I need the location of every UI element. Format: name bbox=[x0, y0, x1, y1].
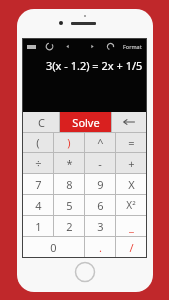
staticText: * bbox=[66, 156, 73, 171]
button[interactable]: Previous bbox=[62, 41, 73, 52]
button[interactable]: 9 bbox=[85, 174, 115, 194]
button[interactable]: 5 bbox=[54, 195, 84, 215]
staticText: . bbox=[99, 240, 102, 255]
staticText: 9 bbox=[97, 177, 104, 192]
button[interactable]: + bbox=[116, 153, 146, 173]
button[interactable]: ÷ bbox=[23, 153, 53, 173]
button[interactable]: Menu bbox=[25, 41, 38, 52]
button[interactable]: 8 bbox=[54, 174, 84, 194]
staticText: 5 bbox=[66, 198, 73, 213]
staticText: / bbox=[129, 240, 134, 255]
staticText: = bbox=[128, 135, 135, 150]
button[interactable]: Format bbox=[121, 43, 144, 50]
staticText: - bbox=[98, 156, 102, 171]
button[interactable]: X bbox=[116, 174, 146, 194]
staticText: 7 bbox=[35, 177, 42, 192]
staticText: 1 bbox=[35, 219, 42, 234]
button[interactable]: 3 bbox=[85, 216, 115, 236]
staticText: 2 bbox=[66, 219, 73, 234]
staticText: C bbox=[38, 115, 45, 130]
button[interactable]: Backspace bbox=[112, 112, 146, 132]
button[interactable]: Solve bbox=[60, 112, 111, 132]
button[interactable]: 0 bbox=[23, 237, 84, 257]
staticText: ÷ bbox=[35, 156, 42, 171]
button[interactable]: 7 bbox=[23, 174, 53, 194]
button[interactable]: _ bbox=[116, 216, 146, 236]
button[interactable]: * bbox=[54, 153, 84, 173]
staticText: Solve bbox=[72, 115, 100, 130]
button[interactable]: ( bbox=[23, 133, 53, 152]
button[interactable]: = bbox=[116, 133, 146, 152]
button[interactable]: . bbox=[85, 237, 115, 257]
button[interactable]: 4 bbox=[23, 195, 53, 215]
staticText: 0 bbox=[50, 240, 57, 255]
staticText: 3 bbox=[97, 219, 104, 234]
staticText: 8 bbox=[66, 177, 73, 192]
button[interactable]: / bbox=[116, 237, 146, 257]
button[interactable]: Undo bbox=[105, 41, 116, 52]
staticText: + bbox=[128, 156, 135, 171]
staticText: X² bbox=[126, 198, 136, 212]
staticText: 3(x - 1.2) = 2x + 1/5 bbox=[46, 58, 143, 73]
button[interactable]: Refresh bbox=[44, 41, 55, 52]
button[interactable]: 2 bbox=[54, 216, 84, 236]
button[interactable]: 6 bbox=[85, 195, 115, 215]
button[interactable]: - bbox=[85, 153, 115, 173]
button[interactable]: ^ bbox=[85, 133, 115, 152]
other: Backspace bbox=[122, 118, 136, 126]
button[interactable]: Home bbox=[74, 261, 96, 283]
button[interactable]: X² bbox=[116, 195, 146, 215]
staticText: X bbox=[128, 177, 135, 192]
staticText: ^ bbox=[97, 135, 104, 150]
staticText: Format bbox=[123, 43, 142, 50]
staticText: ) bbox=[67, 135, 71, 150]
button[interactable]: 1 bbox=[23, 216, 53, 236]
staticText: 4 bbox=[35, 198, 42, 213]
button[interactable]: Next bbox=[87, 41, 98, 52]
button[interactable]: ) bbox=[54, 133, 84, 152]
button[interactable]: C bbox=[23, 112, 59, 132]
staticText: 6 bbox=[97, 198, 104, 213]
staticText: _ bbox=[129, 219, 134, 234]
staticText: ( bbox=[36, 135, 40, 150]
